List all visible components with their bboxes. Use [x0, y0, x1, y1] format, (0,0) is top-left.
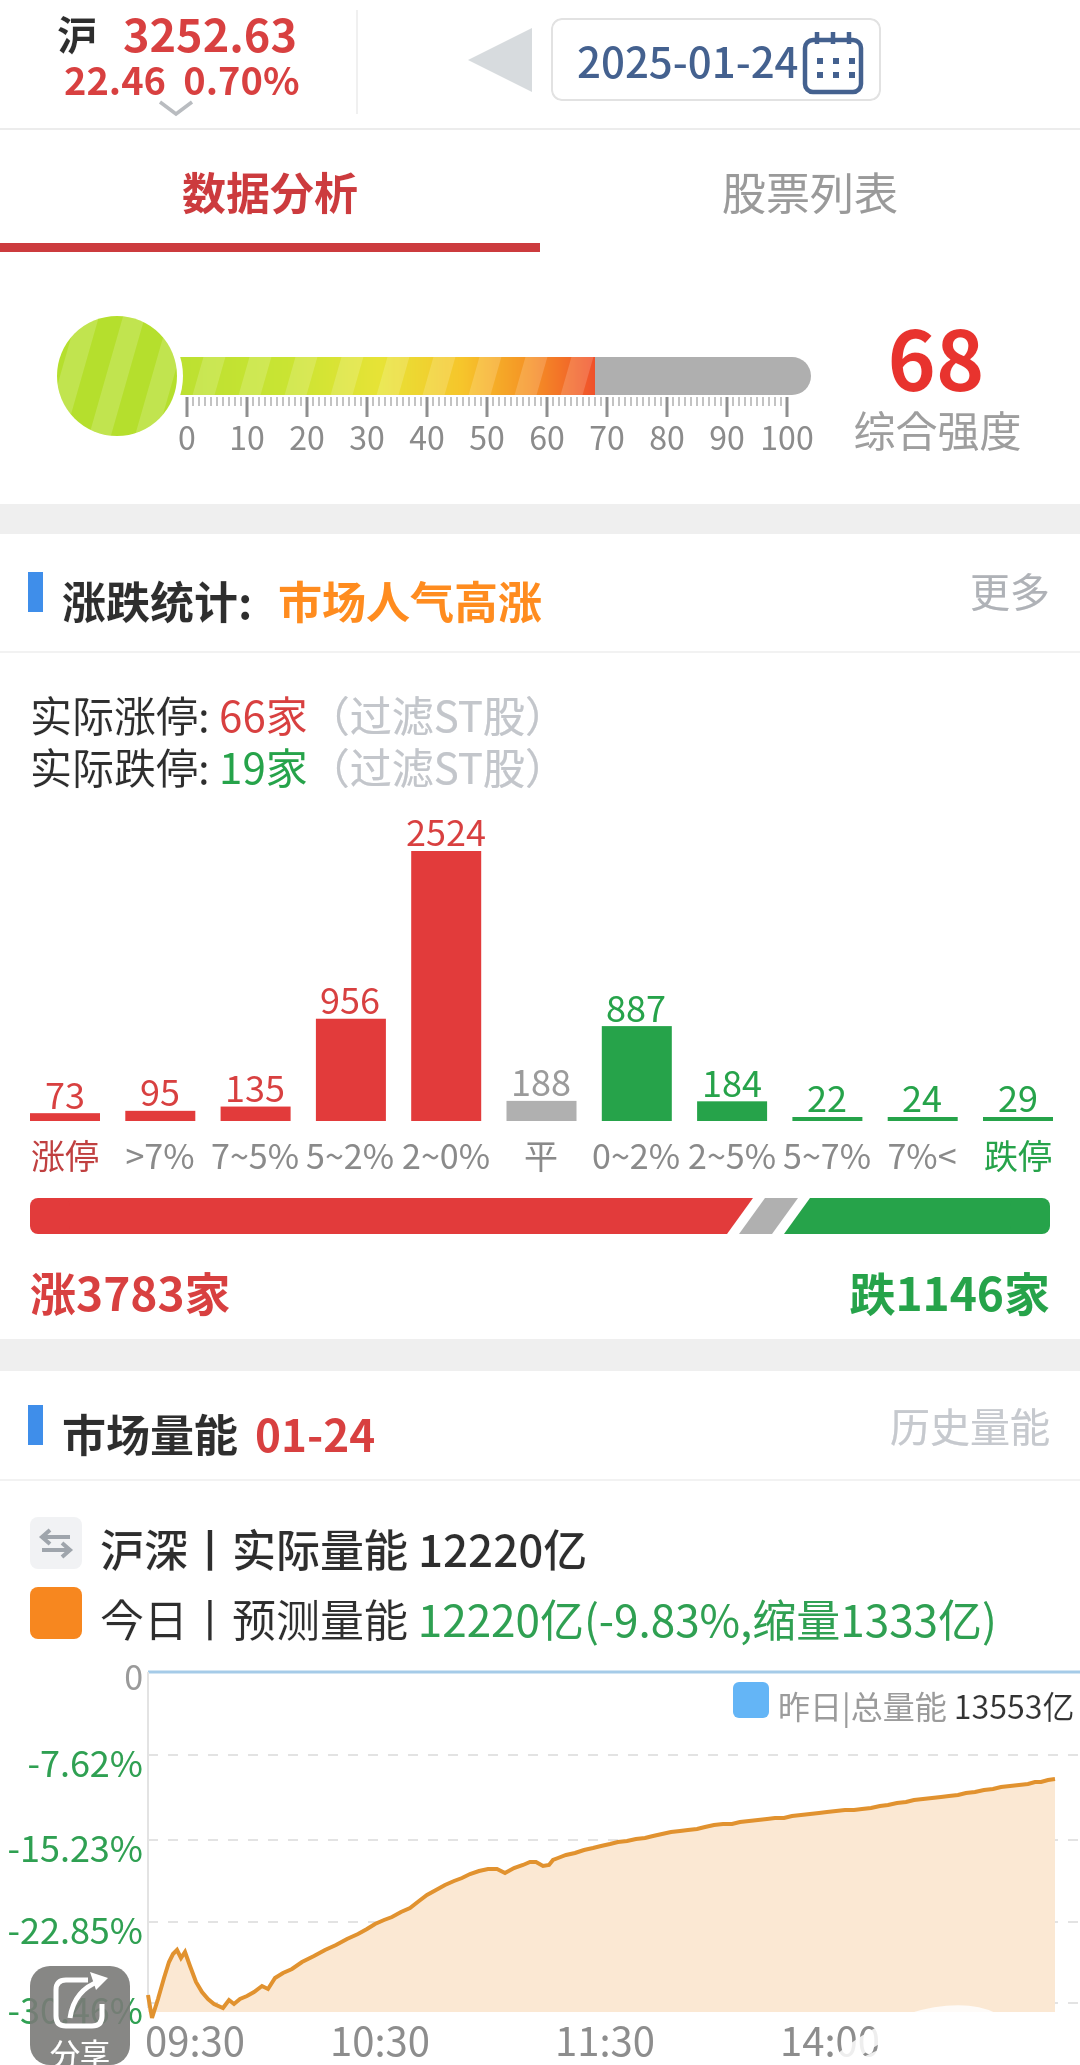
staticText: -30.46% [3, 1982, 143, 2034]
staticText: 更多 [970, 561, 1050, 619]
staticText: 实际跌停: 19家（过滤ST股） [30, 735, 567, 796]
staticText: -22.85% [3, 1902, 143, 1954]
staticText: 01-24 [255, 1401, 376, 1465]
staticText: 涨3783家 [30, 1258, 231, 1325]
staticText: >7% [105, 1130, 215, 1179]
staticText: 历史量能 [890, 1396, 1050, 1454]
staticText: 60 [507, 413, 587, 459]
staticText: 沪深丨实际量能 12220亿 [100, 1516, 588, 1580]
staticText: 实际涨停: 66家（过滤ST股） [30, 683, 567, 744]
staticText: 22.46 0.70% [64, 51, 300, 106]
staticText: 2025-01-24 [577, 29, 799, 90]
staticText: 73 [5, 1067, 125, 1119]
staticText: 今日丨预测量能 12220亿(-9.83%,缩量1333亿) [100, 1586, 997, 1650]
staticText: 跌停 [963, 1130, 1073, 1179]
staticText: 10:30 [320, 2010, 440, 2065]
staticText: 188 [481, 1054, 601, 1106]
staticText: 7~5% [200, 1130, 310, 1179]
staticText: 7%< [867, 1130, 977, 1179]
staticText: 5~7% [772, 1130, 882, 1179]
staticText: 887 [576, 980, 696, 1032]
staticText: 50 [447, 413, 527, 459]
button[interactable] [455, 26, 535, 94]
staticText: 24 [862, 1070, 982, 1122]
staticText: 5~2% [295, 1130, 405, 1179]
staticText: 0 [80, 1651, 143, 1700]
staticText: 涨停 [10, 1130, 120, 1179]
staticText: 20 [267, 413, 347, 459]
staticText: -15.23% [3, 1820, 143, 1872]
staticText: 80 [627, 413, 707, 459]
staticText: 10 [207, 413, 287, 459]
staticText: 22 [767, 1070, 887, 1122]
staticText: 29 [958, 1070, 1078, 1122]
button[interactable]: 2025-01-24 [551, 18, 881, 101]
staticText: 昨日|总量能 13553亿 [778, 1682, 1075, 1728]
staticText: 数据分析 [182, 159, 358, 223]
staticText: 沪 [57, 4, 97, 62]
staticText: 跌1146家 [780, 1258, 1050, 1325]
staticText: 95 [100, 1064, 220, 1116]
staticText: 3252.63 [123, 0, 297, 65]
staticText: 股票列表 [722, 159, 898, 223]
staticText: 11:30 [545, 2010, 665, 2065]
button[interactable]: 分享 [30, 1966, 130, 2065]
staticText: 135 [195, 1060, 315, 1112]
staticText: 14:00 [770, 2010, 890, 2065]
staticText: 184 [672, 1055, 792, 1107]
staticText: 0~2% [581, 1130, 691, 1179]
staticText: 100 [747, 413, 827, 459]
button[interactable]: 历史量能 [880, 1395, 1060, 1455]
button[interactable]: 股票列表 [540, 130, 1080, 252]
staticText: 2524 [386, 804, 506, 856]
staticText: 涨跌统计: [62, 568, 253, 632]
staticText: 70 [567, 413, 647, 459]
staticText: 40 [387, 413, 467, 459]
staticText: 90 [687, 413, 767, 459]
staticText: 09:30 [135, 2010, 255, 2065]
button[interactable]: 更多 [940, 560, 1060, 620]
staticText: -7.62% [23, 1735, 143, 1787]
staticText: 956 [290, 972, 410, 1024]
staticText: 2~0% [391, 1130, 501, 1179]
button[interactable]: 数据分析 [0, 130, 540, 252]
staticText: 市场人气高涨 [278, 568, 542, 632]
staticText: 市场量能 [62, 1401, 238, 1465]
staticText: 0 [147, 413, 227, 459]
staticText: 68 [856, 296, 1016, 415]
staticText: 平 [486, 1130, 596, 1179]
staticText: 分享 [50, 2030, 110, 2065]
staticText: 综合强度 [850, 398, 1025, 459]
staticText: 30 [327, 413, 407, 459]
staticText: 2~5% [677, 1130, 787, 1179]
